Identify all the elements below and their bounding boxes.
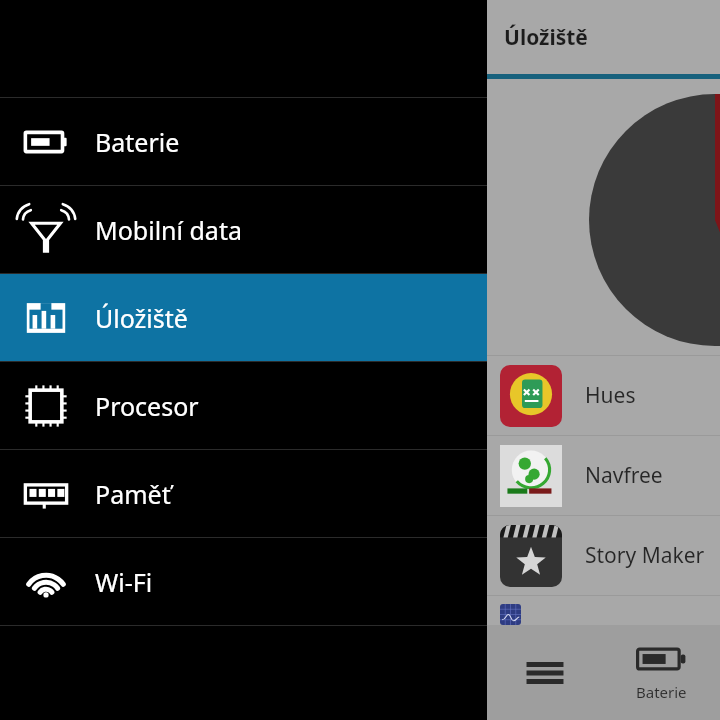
button[interactable]: Baterie: [603, 625, 720, 720]
button[interactable]: Story Maker: [487, 516, 720, 595]
button[interactable]: Mobilní data: [0, 186, 487, 273]
staticText: Baterie: [95, 125, 180, 159]
button[interactable]: Wi-Fi: [0, 538, 487, 625]
button[interactable]: Paměť: [0, 450, 487, 537]
button[interactable]: Baterie: [0, 98, 487, 185]
staticText: Navfree: [585, 461, 663, 490]
staticText: Hues: [585, 381, 636, 410]
staticText: Baterie: [636, 682, 687, 702]
staticText: Mobilní data: [95, 213, 242, 247]
staticText: Paměť: [95, 477, 171, 511]
staticText: Story Maker: [585, 541, 705, 570]
button[interactable]: Procesor: [0, 362, 487, 449]
button[interactable]: Úložiště: [0, 274, 487, 361]
button[interactable]: Hues: [487, 356, 720, 435]
staticText: Procesor: [95, 389, 199, 423]
staticText: Úložiště: [504, 23, 588, 52]
button[interactable]: Menu: [487, 625, 603, 720]
staticText: Úložiště: [95, 301, 188, 335]
button[interactable]: Navfree: [487, 436, 720, 515]
staticText: Wi-Fi: [95, 565, 153, 599]
